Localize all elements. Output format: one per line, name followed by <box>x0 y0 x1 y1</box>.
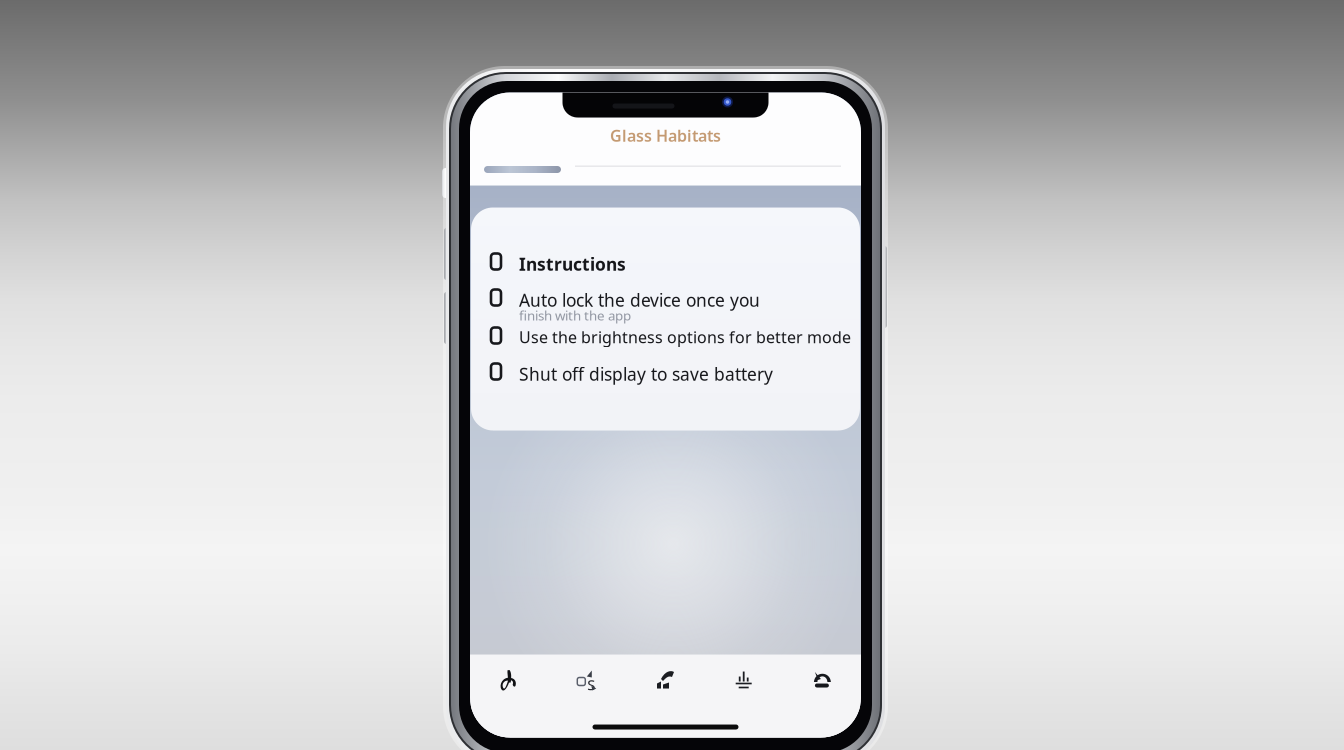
button[interactable]: Account <box>783 654 861 706</box>
button[interactable]: Activity <box>626 654 705 706</box>
button[interactable]: Glass Habitats <box>470 126 861 144</box>
staticText: S <box>587 675 595 694</box>
button[interactable]: Charts <box>705 654 783 706</box>
staticText: Instructions <box>519 252 626 275</box>
staticText: Glass Habitats <box>610 125 721 146</box>
button[interactable]: Back <box>484 158 579 180</box>
staticText: Shut off display to save battery <box>519 362 773 385</box>
staticText: finish with the app <box>519 306 631 324</box>
button[interactable]: Now Playing <box>470 654 548 706</box>
staticText: Use the brightness options for better mo… <box>519 326 851 348</box>
button[interactable]: Browse <box>548 654 626 706</box>
staticText: Auto lock the device once you <box>519 288 760 311</box>
